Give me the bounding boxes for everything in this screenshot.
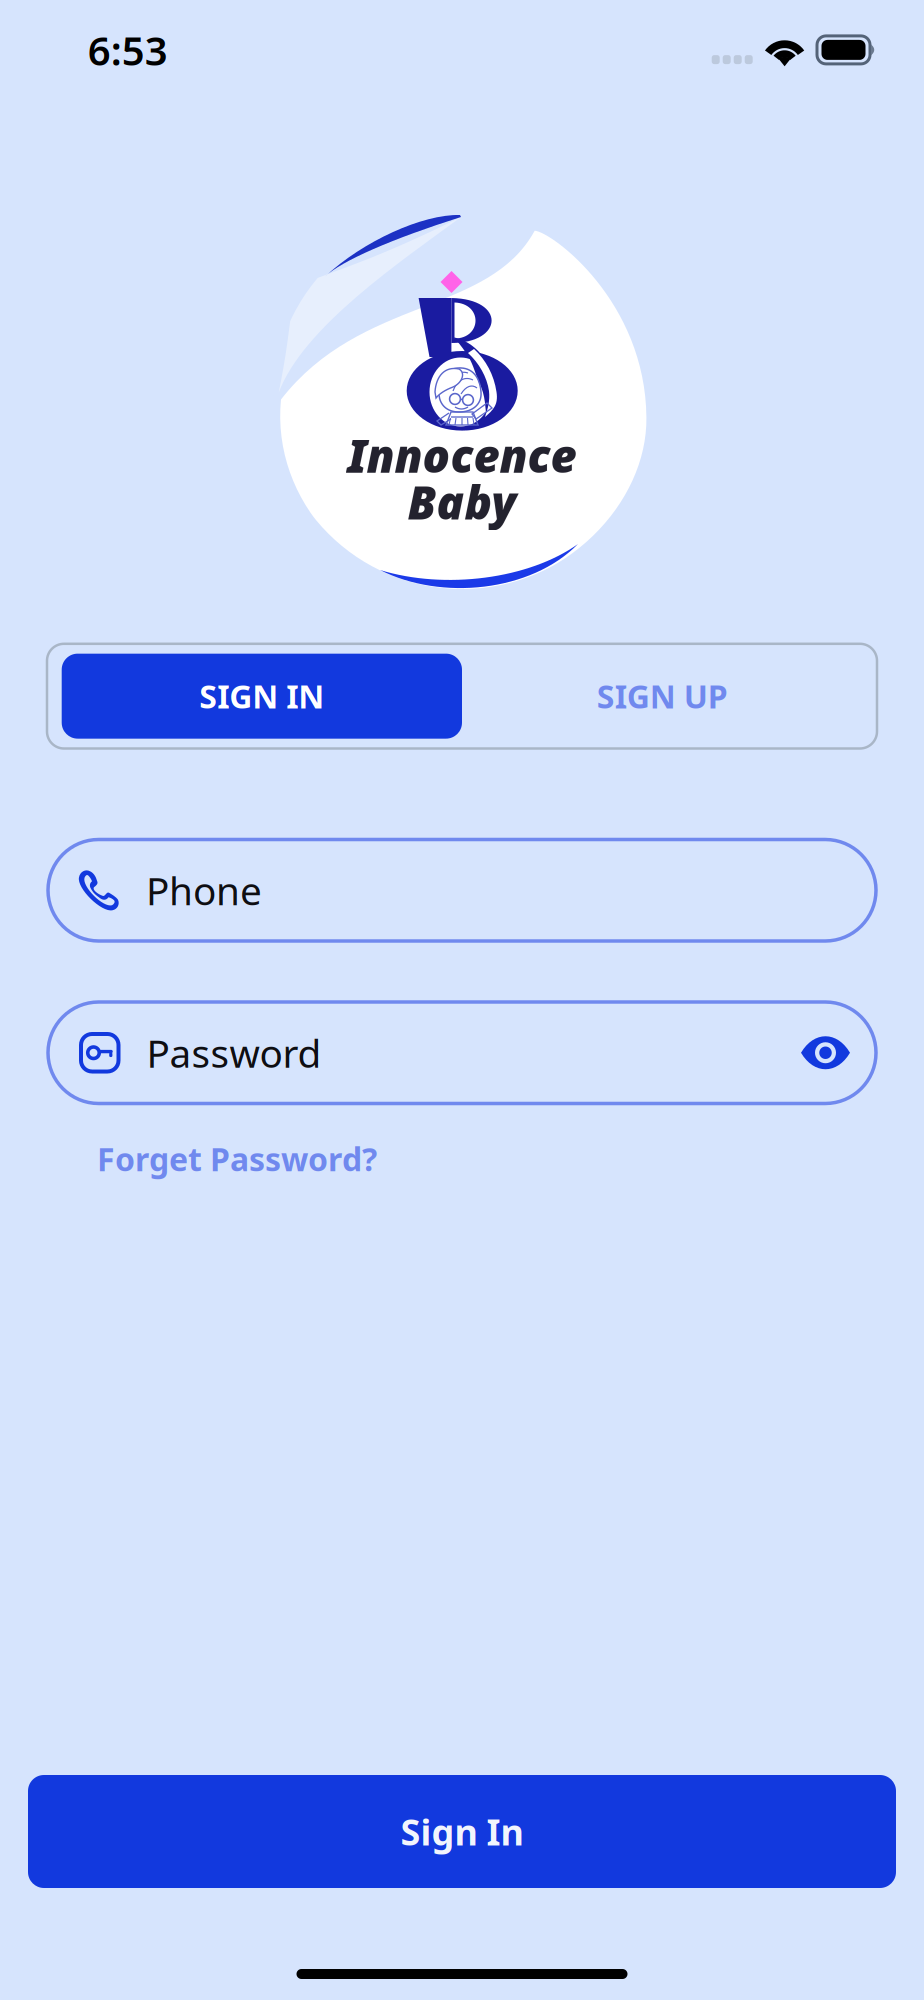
staticText: 6:53: [88, 23, 168, 76]
button[interactable]: SIGN IN: [62, 654, 462, 739]
staticText: Phone: [146, 865, 262, 916]
staticText: Sign In: [400, 1808, 523, 1855]
staticText: Password: [146, 1027, 321, 1078]
button[interactable]: Forget Password?: [97, 1137, 377, 1180]
staticText: Baby: [407, 472, 516, 532]
button[interactable]: Sign In: [28, 1775, 896, 1888]
staticText: SIGN UP: [597, 675, 728, 717]
staticText: Forget Password?: [97, 1137, 377, 1180]
staticText: SIGN IN: [199, 675, 324, 717]
button[interactable]: SIGN UP: [462, 654, 862, 739]
staticText: Innocence: [347, 425, 576, 485]
